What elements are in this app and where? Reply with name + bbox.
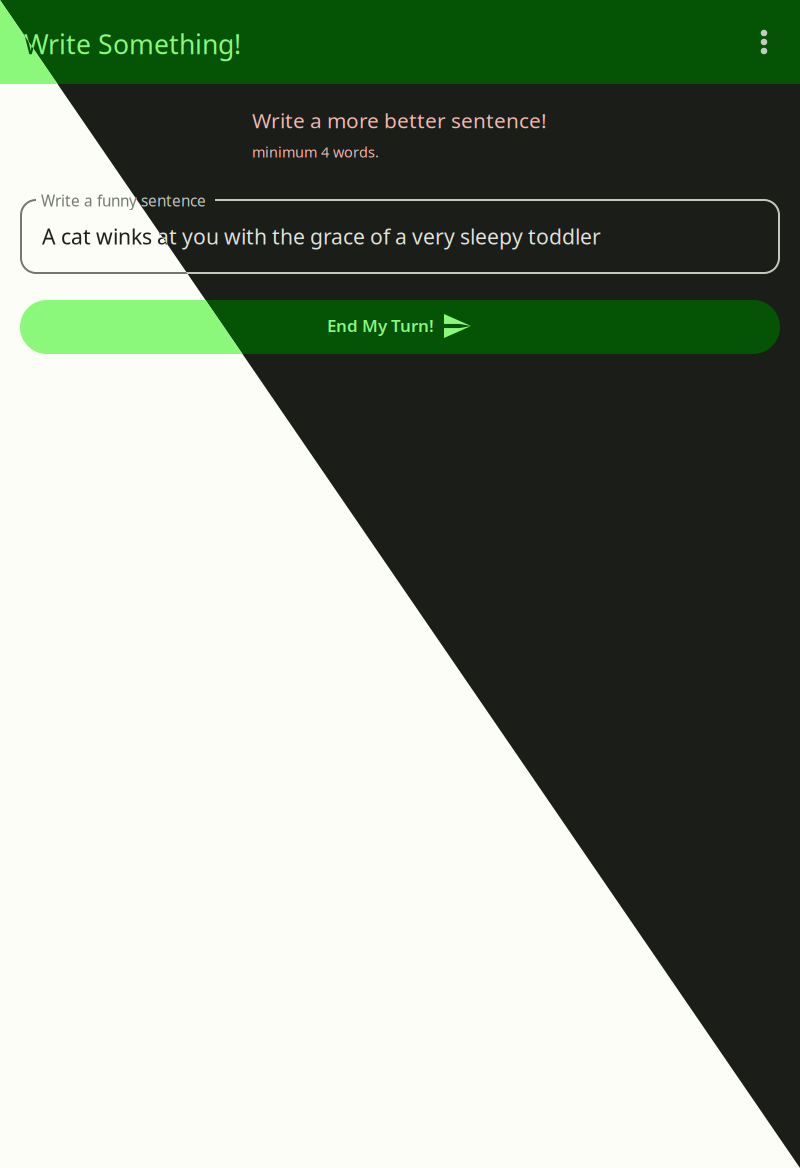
staticText: A cat winks at you with the grace of a v… xyxy=(42,222,601,251)
staticText: Write Something! xyxy=(24,26,241,62)
button[interactable]: End My Turn! xyxy=(20,300,780,354)
staticText: minimum 4 words. xyxy=(252,142,379,162)
staticText: A cat winks at you with the grace of a v… xyxy=(42,222,601,251)
staticText: Write a more better sentence! xyxy=(252,106,547,134)
button[interactable]: More options xyxy=(740,18,788,66)
staticText: End My Turn! xyxy=(327,314,434,337)
staticText: Write Something! xyxy=(24,26,241,62)
staticText: Write a funny sentence xyxy=(41,190,206,211)
button[interactable]: End My Turn! xyxy=(20,300,780,354)
staticText: Write a more better sentence! xyxy=(252,106,547,134)
button[interactable]: More options xyxy=(740,18,788,66)
staticText: Write a funny sentence xyxy=(41,190,206,211)
staticText: minimum 4 words. xyxy=(252,142,379,162)
staticText: End My Turn! xyxy=(327,314,434,337)
